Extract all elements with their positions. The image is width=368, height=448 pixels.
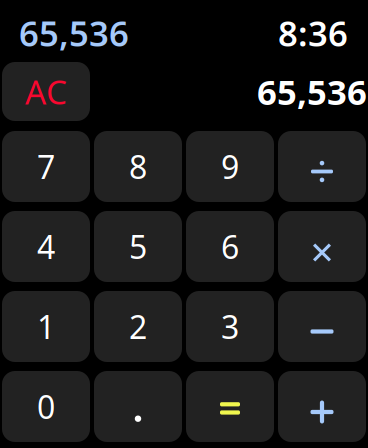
button[interactable]: Minus bbox=[278, 291, 366, 362]
staticText: 6 bbox=[221, 225, 239, 268]
button[interactable]: 3 bbox=[186, 291, 274, 362]
button[interactable]: Divide bbox=[278, 131, 366, 202]
staticText: 9 bbox=[221, 145, 239, 188]
button[interactable]: 0 bbox=[2, 371, 90, 442]
staticText: 4 bbox=[37, 225, 55, 268]
button[interactable]: 7 bbox=[2, 131, 90, 202]
button[interactable]: 6 bbox=[186, 211, 274, 282]
staticText: 3 bbox=[221, 305, 239, 348]
staticText: 0 bbox=[37, 385, 55, 428]
staticText: 8:36 bbox=[278, 10, 348, 56]
staticText: 8 bbox=[129, 145, 147, 188]
button[interactable]: 1 bbox=[2, 291, 90, 362]
button[interactable]: 5 bbox=[94, 211, 182, 282]
staticText: AC bbox=[25, 69, 67, 114]
button[interactable]: Equals bbox=[186, 371, 274, 442]
button[interactable]: 9 bbox=[186, 131, 274, 202]
button[interactable]: 8 bbox=[94, 131, 182, 202]
button[interactable]: AC bbox=[2, 62, 90, 121]
staticText: 65,536 bbox=[257, 68, 367, 114]
staticText: 1 bbox=[37, 305, 55, 348]
button[interactable]: 2 bbox=[94, 291, 182, 362]
staticText: 7 bbox=[37, 145, 55, 188]
button[interactable]: Multiply bbox=[278, 211, 366, 282]
button[interactable]: Decimal point bbox=[94, 371, 182, 442]
staticText: 2 bbox=[129, 305, 147, 348]
staticText: 5 bbox=[129, 225, 147, 268]
staticText: 65,536 bbox=[19, 10, 129, 56]
button[interactable]: Plus bbox=[278, 371, 366, 442]
button[interactable]: 4 bbox=[2, 211, 90, 282]
